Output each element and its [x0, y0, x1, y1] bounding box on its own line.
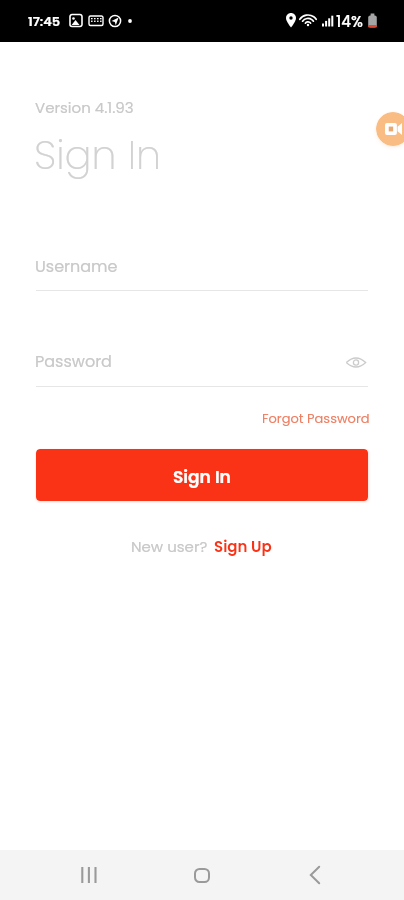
staticText: Sign In — [34, 127, 161, 183]
staticText: Sign Up — [214, 536, 272, 557]
staticText: 14% — [336, 11, 363, 32]
staticText: 17:45 — [28, 12, 61, 30]
button[interactable]: Sign In — [36, 449, 368, 501]
button[interactable]: Forgot Password — [254, 403, 378, 433]
staticText: Password — [35, 350, 112, 372]
button[interactable]: Show password — [344, 350, 368, 374]
button[interactable]: Back — [297, 857, 333, 893]
staticText: Forgot Password — [262, 409, 370, 427]
button[interactable]: Sign Up — [212, 532, 274, 561]
button[interactable]: Home — [184, 857, 220, 893]
button[interactable]: Video call — [376, 112, 404, 146]
staticText: Sign In — [173, 465, 231, 489]
staticText: Version 4.1.93 — [35, 97, 134, 118]
staticText: New user? — [131, 536, 212, 557]
button[interactable]: Password — [36, 345, 368, 387]
staticText: Username — [35, 255, 118, 277]
button[interactable]: Recent apps — [71, 857, 107, 893]
button[interactable]: Username — [36, 250, 368, 291]
